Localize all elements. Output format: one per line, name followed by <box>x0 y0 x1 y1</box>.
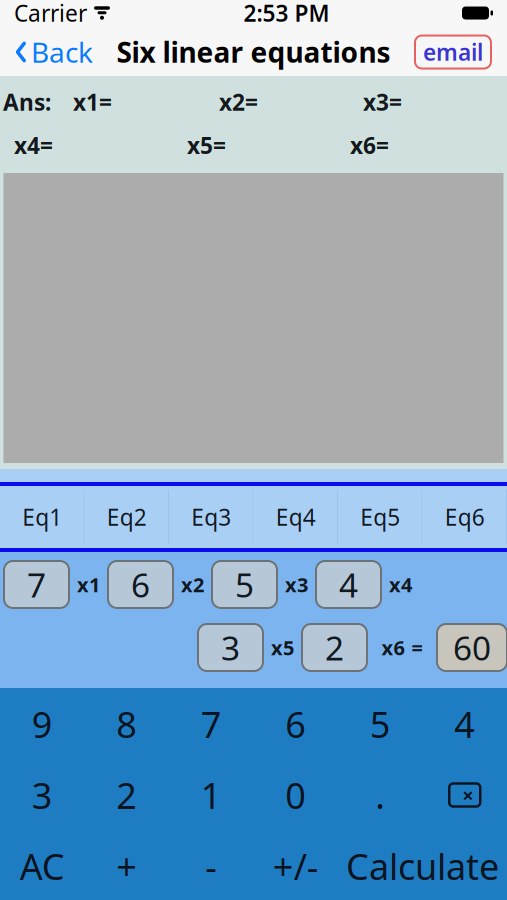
staticText: 1 <box>201 771 222 819</box>
button[interactable]: 7 <box>4 561 69 608</box>
staticText: Eq6 <box>445 502 485 532</box>
button[interactable]: Eq4 <box>253 486 338 548</box>
staticText: 3 <box>32 771 53 819</box>
button[interactable]: Calculate <box>338 830 507 900</box>
button[interactable]: 1 <box>169 759 253 830</box>
button[interactable]: 3 <box>0 759 84 830</box>
staticText: Eq3 <box>191 502 231 532</box>
staticText: x6= <box>350 130 389 160</box>
button[interactable]: 8 <box>84 688 169 759</box>
button[interactable]: email <box>415 35 491 68</box>
button[interactable]: AC <box>0 830 84 900</box>
staticText: 3 <box>221 625 240 670</box>
button[interactable]: 4 <box>422 688 507 759</box>
staticText: 6 <box>131 562 150 607</box>
button[interactable]: 6 <box>253 688 338 759</box>
staticText: Ans: <box>3 87 51 117</box>
staticText: 6 <box>285 700 306 748</box>
staticText: x3 <box>285 571 308 598</box>
staticText: x1= <box>73 87 112 117</box>
staticText: 5 <box>370 700 391 748</box>
button[interactable]: . <box>338 759 422 830</box>
staticText: × <box>462 782 473 808</box>
staticText: 5 <box>235 562 254 607</box>
staticText: 4 <box>339 562 358 607</box>
staticText: x4= <box>14 130 53 160</box>
staticText: x1 <box>77 571 100 598</box>
staticText: . <box>375 771 385 819</box>
button[interactable]: 9 <box>0 688 84 759</box>
button[interactable]: Eq2 <box>84 486 169 548</box>
button[interactable]: 6 <box>108 561 173 608</box>
button[interactable]: 0 <box>253 759 338 830</box>
staticText: x2 <box>181 571 204 598</box>
staticText: 7 <box>27 562 46 607</box>
button[interactable]: 3 <box>198 624 263 671</box>
staticText: 0 <box>285 771 306 819</box>
staticText: 8 <box>116 700 137 748</box>
button[interactable]: 2 <box>84 759 169 830</box>
button[interactable]: 5 <box>338 688 422 759</box>
staticText: 4 <box>454 700 475 748</box>
staticText: +/- <box>273 842 319 890</box>
staticText: x5= <box>187 130 226 160</box>
staticText: 2 <box>325 625 344 670</box>
button[interactable]: Delete <box>422 759 507 830</box>
staticText: Eq5 <box>360 502 400 532</box>
button[interactable]: 7 <box>169 688 253 759</box>
staticText: Eq2 <box>107 502 147 532</box>
button[interactable]: Eq1 <box>0 486 84 548</box>
button[interactable]: 60 <box>437 624 507 671</box>
staticText: Eq4 <box>276 502 316 532</box>
staticText: = <box>411 634 422 661</box>
button[interactable]: - <box>169 830 253 900</box>
staticText: x3= <box>363 87 402 117</box>
button[interactable]: 2 <box>302 624 367 671</box>
staticText: Six linear equations <box>116 33 390 71</box>
staticText: x5 <box>271 634 294 661</box>
staticText: Eq1 <box>22 502 62 532</box>
button[interactable]: Eq6 <box>422 486 507 548</box>
staticText: + <box>116 842 137 890</box>
staticText: 7 <box>201 700 222 748</box>
staticText: Carrier <box>14 0 87 28</box>
staticText: 2 <box>116 771 137 819</box>
button[interactable]: 5 <box>212 561 277 608</box>
staticText: 2:53 PM <box>243 0 329 28</box>
staticText: 9 <box>32 700 53 748</box>
button[interactable]: + <box>84 830 169 900</box>
button[interactable]: Eq3 <box>169 486 253 548</box>
staticText: 60 <box>453 625 491 670</box>
button[interactable]: 4 <box>316 561 381 608</box>
staticText: Calculate <box>346 842 499 890</box>
staticText: AC <box>20 842 65 890</box>
staticText: email <box>423 37 483 67</box>
button[interactable]: +/- <box>253 830 338 900</box>
staticText: x4 <box>389 571 412 598</box>
button[interactable]: Back <box>0 29 103 75</box>
staticText: x6 <box>381 634 404 661</box>
staticText: Back <box>31 33 93 71</box>
button[interactable]: Eq5 <box>338 486 422 548</box>
staticText: - <box>205 842 217 890</box>
staticText: x2= <box>219 87 258 117</box>
